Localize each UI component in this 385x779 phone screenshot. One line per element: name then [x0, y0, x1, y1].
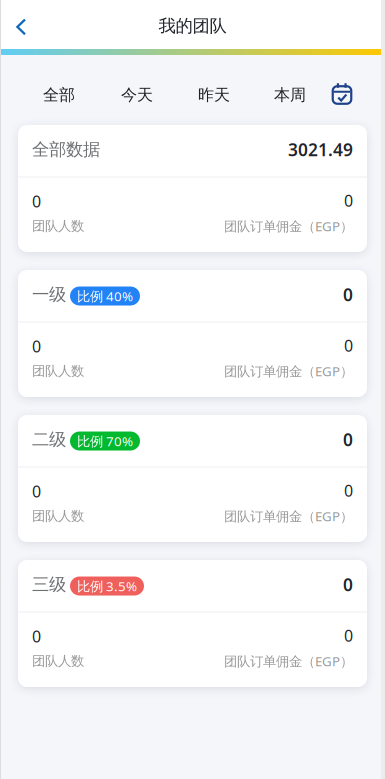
staticText: 比例 70%: [77, 432, 133, 450]
button[interactable]: 昨天: [176, 68, 252, 112]
staticText: 0: [32, 626, 41, 647]
staticText: 0: [344, 625, 353, 646]
staticText: 0: [343, 283, 353, 306]
staticText: 0: [343, 573, 353, 596]
staticText: 全部数据: [32, 139, 100, 160]
staticText: 团队人数: [32, 218, 84, 234]
button[interactable]: Back: [0, 0, 44, 48]
button[interactable]: Pick date: [328, 68, 356, 112]
staticText: 团队订单佣金（EGP）: [224, 652, 353, 670]
staticText: 0: [343, 428, 353, 451]
staticText: 本周: [274, 85, 306, 105]
staticText: 全部: [43, 85, 75, 105]
staticText: 一级: [32, 284, 66, 305]
staticText: 我的团队: [158, 15, 226, 37]
staticText: 3021.49: [288, 138, 353, 161]
staticText: 0: [32, 191, 41, 212]
button[interactable]: 全部: [20, 68, 98, 112]
staticText: 0: [32, 481, 41, 502]
staticText: 0: [32, 336, 41, 357]
staticText: 今天: [121, 85, 153, 105]
staticText: 团队人数: [32, 653, 84, 669]
staticText: 团队订单佣金（EGP）: [224, 362, 353, 380]
staticText: 团队人数: [32, 363, 84, 379]
staticText: 三级: [32, 574, 66, 595]
staticText: 0: [344, 335, 353, 356]
staticText: 团队人数: [32, 508, 84, 524]
staticText: 团队订单佣金（EGP）: [224, 507, 353, 525]
staticText: 团队订单佣金（EGP）: [224, 217, 353, 235]
button[interactable]: 本周: [252, 68, 328, 112]
staticText: 二级: [32, 429, 66, 450]
staticText: 0: [344, 480, 353, 501]
button[interactable]: 今天: [98, 68, 176, 112]
staticText: 昨天: [198, 85, 230, 105]
staticText: 比例 3.5%: [77, 577, 137, 595]
staticText: 比例 40%: [77, 287, 133, 305]
staticText: 0: [344, 190, 353, 211]
